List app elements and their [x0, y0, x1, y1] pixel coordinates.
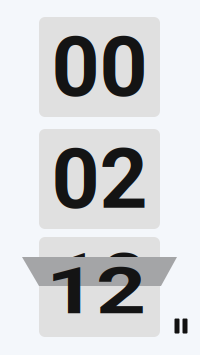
button[interactable]: Pause: [169, 314, 193, 338]
staticText: 02: [51, 130, 147, 228]
staticText: 12: [52, 235, 148, 333]
staticText: 00: [51, 18, 147, 116]
staticText: 12: [48, 242, 144, 340]
